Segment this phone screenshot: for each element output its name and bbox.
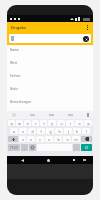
staticText: s xyxy=(22,129,24,134)
button[interactable]: t xyxy=(40,120,47,126)
button[interactable]: Notiz xyxy=(7,84,93,97)
staticText: r xyxy=(35,121,37,126)
staticText: u xyxy=(60,121,63,126)
button[interactable]: Recent apps xyxy=(71,157,77,163)
button[interactable]: x xyxy=(27,136,35,142)
staticText: t xyxy=(43,121,45,126)
staticText: d xyxy=(31,129,34,134)
button[interactable]: Emoji xyxy=(29,144,36,151)
button[interactable]: Clear text xyxy=(9,34,91,43)
staticText: i xyxy=(70,121,71,126)
staticText: v xyxy=(48,137,50,142)
button[interactable]: i xyxy=(66,120,74,126)
staticText: , xyxy=(24,145,25,150)
button[interactable]: u xyxy=(57,120,65,126)
button[interactable]: k xyxy=(73,128,81,134)
button[interactable]: h xyxy=(55,128,63,134)
button[interactable]: f xyxy=(37,128,45,134)
staticText: Eingabe xyxy=(11,25,27,30)
staticText: Einheit xyxy=(10,74,21,78)
button[interactable]: q xyxy=(8,120,15,126)
button[interactable]: Wert xyxy=(7,58,93,71)
button[interactable]: b xyxy=(54,136,62,142)
button[interactable]: n xyxy=(63,136,71,142)
button[interactable]: Enter xyxy=(81,144,92,151)
button[interactable]: Bemerkungen xyxy=(7,97,93,110)
staticText: Bemerkungen xyxy=(10,100,32,104)
button[interactable]: l xyxy=(82,128,90,134)
staticText: n xyxy=(66,137,69,142)
staticText: a xyxy=(13,129,15,134)
staticText: m xyxy=(74,137,78,142)
staticText: Wert xyxy=(10,61,18,65)
staticText: w xyxy=(18,121,21,126)
staticText: h xyxy=(58,129,61,134)
button[interactable]: w xyxy=(16,120,23,126)
button[interactable]: c xyxy=(36,136,44,142)
button[interactable]: v xyxy=(45,136,53,142)
button[interactable]: e xyxy=(24,120,31,126)
staticText: . xyxy=(76,145,77,150)
button[interactable]: ?123 xyxy=(8,144,20,151)
button[interactable]: Backspace xyxy=(81,136,92,142)
staticText: x xyxy=(30,137,32,142)
staticText: e xyxy=(27,121,29,126)
staticText: Name xyxy=(10,48,19,52)
staticText: o xyxy=(78,121,81,126)
button[interactable]: s xyxy=(19,128,27,134)
button[interactable]: a xyxy=(10,128,18,134)
button[interactable]: m xyxy=(72,136,80,142)
button[interactable]: Clear text xyxy=(83,36,89,42)
button[interactable]: Back xyxy=(19,157,25,163)
staticText: Notiz xyxy=(10,87,18,91)
button[interactable]: j xyxy=(64,128,72,134)
button[interactable]: z xyxy=(19,136,26,142)
staticText: ?123 xyxy=(10,145,18,150)
button[interactable]: Name xyxy=(7,45,93,58)
button[interactable]: Einheit xyxy=(7,71,93,84)
button[interactable]: Shift xyxy=(8,136,18,142)
button[interactable]: More options xyxy=(83,23,91,31)
staticText: c xyxy=(39,137,41,142)
button[interactable]: , xyxy=(21,144,28,151)
button[interactable]: Keyboard switcher xyxy=(81,157,87,163)
button[interactable]: Home xyxy=(45,157,51,163)
staticText: p xyxy=(87,121,90,126)
button[interactable]: p xyxy=(84,120,92,126)
staticText: f xyxy=(40,129,42,134)
staticText: b xyxy=(57,137,60,142)
button[interactable]: d xyxy=(28,128,36,134)
button[interactable]: y xyxy=(48,120,56,126)
button[interactable]: g xyxy=(46,128,54,134)
staticText: z xyxy=(22,137,24,142)
button[interactable]: Google assistant xyxy=(12,113,16,117)
staticText: y xyxy=(51,121,53,126)
button[interactable]: r xyxy=(32,120,39,126)
staticText: l xyxy=(86,129,87,134)
staticText: q xyxy=(10,121,13,126)
staticText: j xyxy=(68,129,69,134)
staticText: k xyxy=(76,129,78,134)
staticText: g xyxy=(49,129,52,134)
button[interactable]: o xyxy=(75,120,83,126)
